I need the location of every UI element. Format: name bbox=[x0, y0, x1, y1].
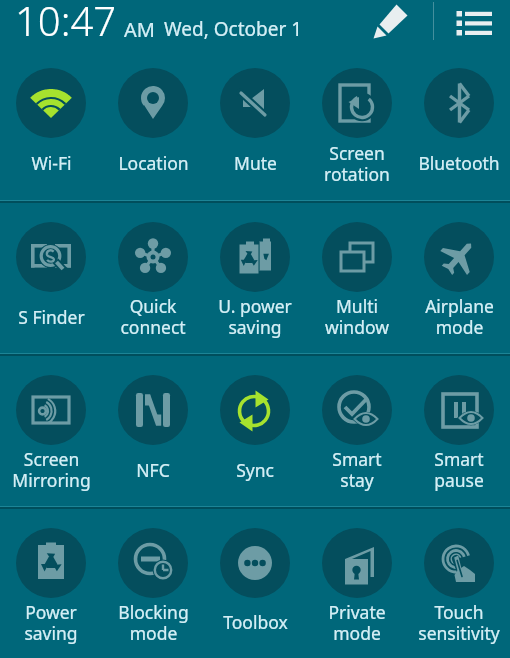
button[interactable]: Quick connect bbox=[102, 203, 204, 353]
button[interactable]: Smart stay bbox=[306, 356, 408, 506]
staticText: Private mode bbox=[328, 600, 386, 645]
staticText: Airplane mode bbox=[425, 294, 494, 339]
staticText: Quick connect bbox=[120, 294, 186, 339]
staticText: Multi window bbox=[325, 294, 389, 339]
staticText: Mute bbox=[234, 151, 277, 175]
staticText: Blocking mode bbox=[118, 600, 189, 645]
staticText: Wed, October 1 bbox=[164, 16, 303, 42]
button[interactable]: Settings list bbox=[450, 1, 494, 45]
staticText: U. power saving bbox=[218, 294, 292, 339]
button[interactable]: Smart pause bbox=[408, 356, 510, 506]
staticText: S Finder bbox=[18, 305, 85, 329]
button[interactable]: Edit bbox=[372, 3, 409, 40]
button[interactable]: Private mode bbox=[306, 509, 408, 658]
button[interactable]: Wi-Fi bbox=[0, 49, 102, 200]
staticText: Toolbox bbox=[223, 610, 288, 634]
button[interactable]: Power saving bbox=[0, 509, 102, 658]
button[interactable]: Mute bbox=[204, 49, 306, 200]
button[interactable]: NFC bbox=[102, 356, 204, 506]
staticText: Screen Mirroring bbox=[12, 447, 91, 492]
staticText: NFC bbox=[136, 458, 170, 482]
staticText: Location bbox=[118, 151, 189, 175]
staticText: Screen rotation bbox=[324, 141, 390, 186]
staticText: Smart stay bbox=[332, 447, 382, 492]
button[interactable]: Touch sensitivity bbox=[408, 509, 510, 658]
button[interactable]: Screen rotation bbox=[306, 49, 408, 200]
staticText: Touch sensitivity bbox=[418, 600, 500, 645]
button[interactable]: S Finder bbox=[0, 203, 102, 353]
staticText: AM bbox=[124, 16, 155, 43]
button[interactable]: Blocking mode bbox=[102, 509, 204, 658]
staticText: Bluetooth bbox=[418, 151, 500, 175]
staticText: Power saving bbox=[24, 600, 78, 645]
staticText: Smart pause bbox=[434, 447, 484, 492]
button[interactable]: Multi window bbox=[306, 203, 408, 353]
button[interactable]: Location bbox=[102, 49, 204, 200]
button[interactable]: U. power saving bbox=[204, 203, 306, 353]
button[interactable]: Airplane mode bbox=[408, 203, 510, 353]
staticText: 10:47 bbox=[15, 0, 117, 42]
button[interactable]: Sync bbox=[204, 356, 306, 506]
staticText: Wi-Fi bbox=[31, 151, 72, 175]
staticText: Sync bbox=[236, 458, 274, 482]
button[interactable]: Toolbox bbox=[204, 509, 306, 658]
button[interactable]: Bluetooth bbox=[408, 49, 510, 200]
button[interactable]: Screen Mirroring bbox=[0, 356, 102, 506]
